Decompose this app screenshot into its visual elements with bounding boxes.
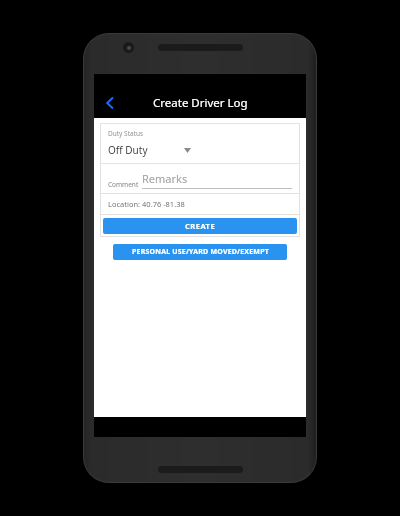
staticText: PERSONAL USE/YARD MOVED/EXEMPT	[132, 247, 269, 257]
staticText: Comment	[108, 180, 139, 189]
button[interactable]: Comment	[100, 164, 300, 193]
button[interactable]: Back	[97, 90, 123, 116]
staticText: Off Duty	[108, 143, 148, 157]
staticText: Remarks	[142, 171, 188, 186]
staticText: Create Driver Log	[153, 95, 248, 111]
button[interactable]: PERSONAL USE/YARD MOVED/EXEMPT	[113, 244, 287, 260]
button[interactable]: CREATE	[103, 218, 297, 234]
staticText: Location: 40.76 -81.38	[108, 199, 185, 209]
staticText: Duty Status	[108, 129, 144, 138]
staticText: CREATE	[185, 221, 216, 231]
button[interactable]: Duty Status	[100, 123, 300, 163]
